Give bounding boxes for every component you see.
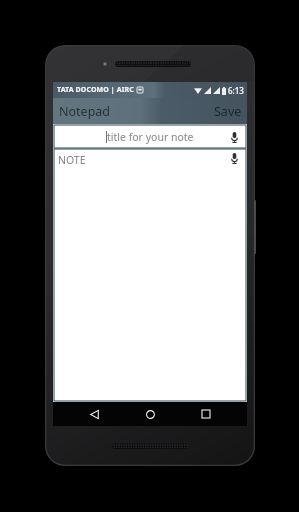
button[interactable]: Voice input for title — [227, 130, 241, 144]
button[interactable]: Save — [214, 98, 242, 124]
staticText: TATA DOCOMO | AIRC — [57, 85, 134, 95]
staticText: Notepad — [59, 103, 111, 120]
button[interactable]: title for your note — [54, 125, 246, 148]
staticText: Save — [214, 103, 242, 120]
button[interactable]: Home — [135, 402, 165, 426]
staticText: NOTE — [58, 153, 86, 167]
staticText: title for your note — [107, 130, 194, 144]
staticText: 6:13 — [228, 85, 244, 96]
button[interactable]: Recent apps — [191, 402, 221, 426]
button[interactable]: Notepad — [59, 98, 111, 124]
button[interactable]: Voice input for note — [227, 151, 241, 165]
button[interactable]: Back — [79, 402, 109, 426]
button[interactable]: NOTE — [54, 149, 246, 401]
